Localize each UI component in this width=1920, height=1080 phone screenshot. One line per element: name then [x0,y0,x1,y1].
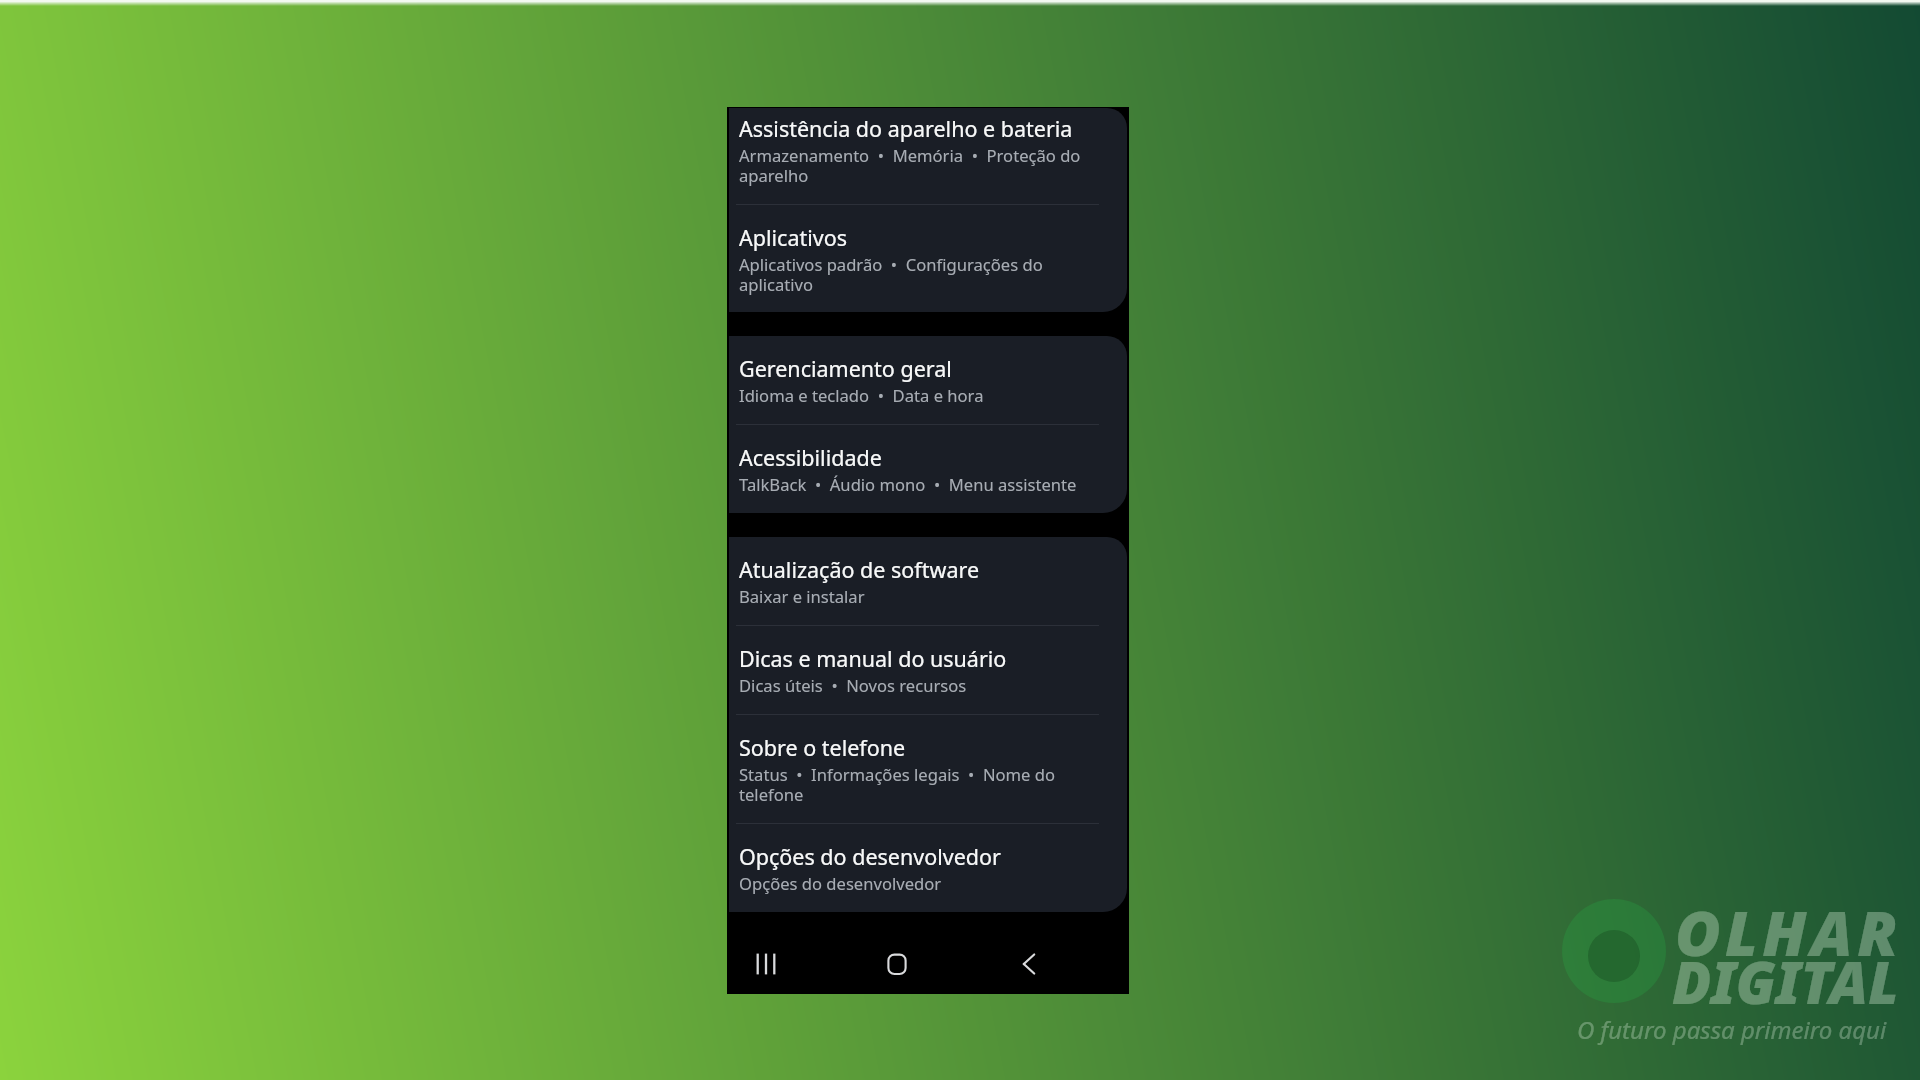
staticText: Baixar e instalar [739,585,1083,608]
button[interactable]: Acessibilidade [729,425,1127,513]
staticText: DIGITAL [1672,943,1899,1021]
button[interactable]: Opções do desenvolvedor [729,824,1127,912]
button[interactable]: Aplicativos [729,205,1127,300]
staticText: Gerenciamento geral [739,354,952,383]
staticText: Sobre o telefone [739,733,906,762]
staticText: Opções do desenvolvedor [739,872,1083,895]
button[interactable]: Gerenciamento geral [729,336,1127,424]
staticText: TalkBack • Áudio mono • Menu assistente [739,473,1083,496]
button[interactable]: Home [873,940,921,988]
staticText: O futuro passa primeiro aqui [1577,1013,1887,1046]
staticText: Acessibilidade [739,443,882,472]
staticText: Armazenamento • Memória • Proteção do ap… [739,144,1083,187]
staticText: Assistência do aparelho e bateria [739,114,1073,143]
button[interactable]: Back [1005,940,1053,988]
staticText: Dicas úteis • Novos recursos [739,674,1083,697]
staticText: Status • Informações legais • Nome do te… [739,763,1083,806]
staticText: Opções do desenvolvedor [739,842,1001,871]
staticText: Aplicativos padrão • Configurações do ap… [739,253,1083,296]
button[interactable]: Assistência do aparelho e bateria [729,108,1127,204]
staticText: Atualização de software [739,555,980,584]
button[interactable]: Dicas e manual do usuário [729,626,1127,714]
staticText: Dicas e manual do usuário [739,644,1007,673]
button[interactable]: Sobre o telefone [729,715,1127,823]
staticText: Idioma e teclado • Data e hora [739,384,1083,407]
button[interactable]: Recent apps [742,940,790,988]
staticText: OLHAR [1675,890,1902,974]
staticText: Aplicativos [739,223,847,252]
button[interactable]: Atualização de software [729,537,1127,625]
